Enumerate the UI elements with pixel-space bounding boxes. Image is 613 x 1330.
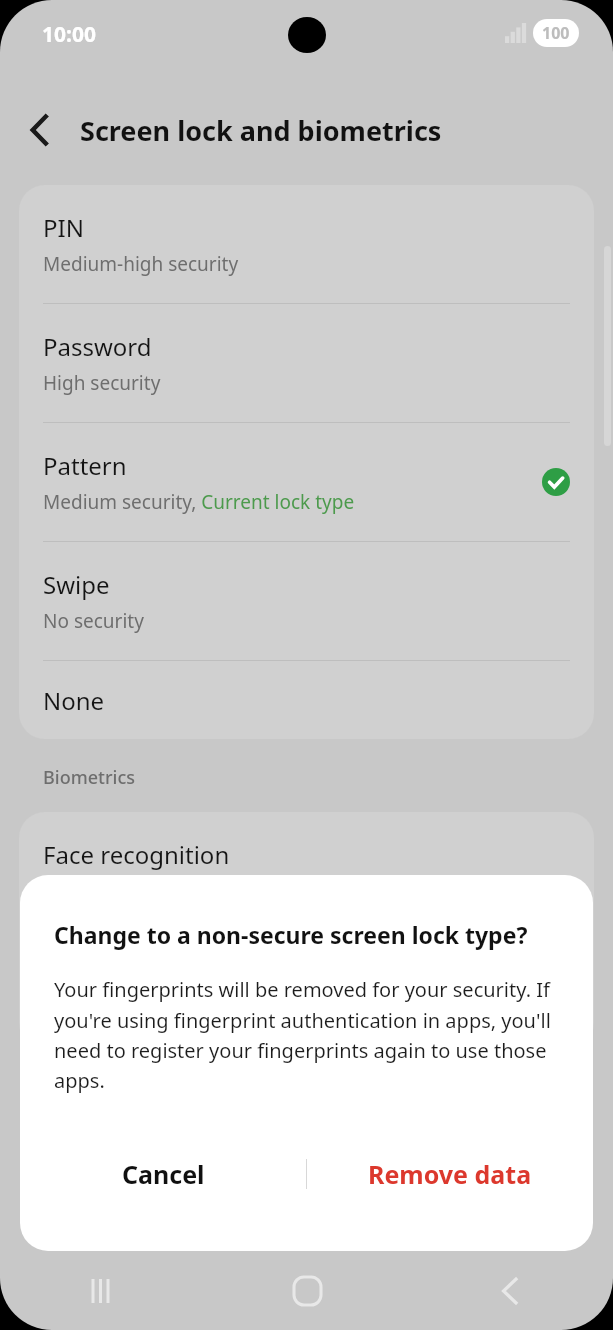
button[interactable]: Pattern: [19, 423, 594, 542]
staticText: Password: [43, 330, 152, 363]
button[interactable]: Swipe: [19, 542, 594, 661]
button[interactable]: Remove data: [307, 1141, 593, 1207]
staticText: 10:00: [42, 20, 96, 49]
staticText: Biometrics: [43, 765, 135, 790]
button[interactable]: Fingerprints: [19, 931, 594, 1049]
staticText: Screen lock and biometrics: [80, 112, 442, 149]
button[interactable]: PIN: [19, 185, 594, 304]
button[interactable]: Password: [19, 304, 594, 423]
staticText: None: [43, 684, 105, 717]
button[interactable]: Back: [0, 96, 80, 164]
staticText: 100: [542, 22, 570, 44]
staticText: Swipe: [43, 568, 110, 601]
staticText: Change to a non-secure screen lock type?: [54, 919, 528, 950]
staticText: Cancel: [122, 1157, 205, 1191]
staticText: Medium-high security: [43, 251, 239, 277]
button[interactable]: Home: [205, 1258, 409, 1330]
staticText: No security: [43, 608, 144, 634]
staticText: Your fingerprints will be removed for yo…: [54, 976, 567, 1093]
staticText: Remove data: [368, 1157, 532, 1191]
button[interactable]: Face recognition: [19, 812, 594, 931]
staticText: Pattern: [43, 449, 127, 482]
staticText: Fingerprints: [43, 957, 181, 990]
staticText: Face recognition: [43, 838, 230, 871]
staticText: High security: [43, 370, 161, 396]
staticText: 1 fingerprint added: [43, 997, 217, 1023]
button[interactable]: Back: [409, 1258, 613, 1330]
staticText: Medium security, Current lock type: [43, 489, 355, 515]
button[interactable]: Cancel: [20, 1141, 306, 1207]
staticText: PIN: [43, 211, 84, 244]
button[interactable]: None: [19, 661, 594, 739]
button[interactable]: Recents: [0, 1258, 205, 1330]
